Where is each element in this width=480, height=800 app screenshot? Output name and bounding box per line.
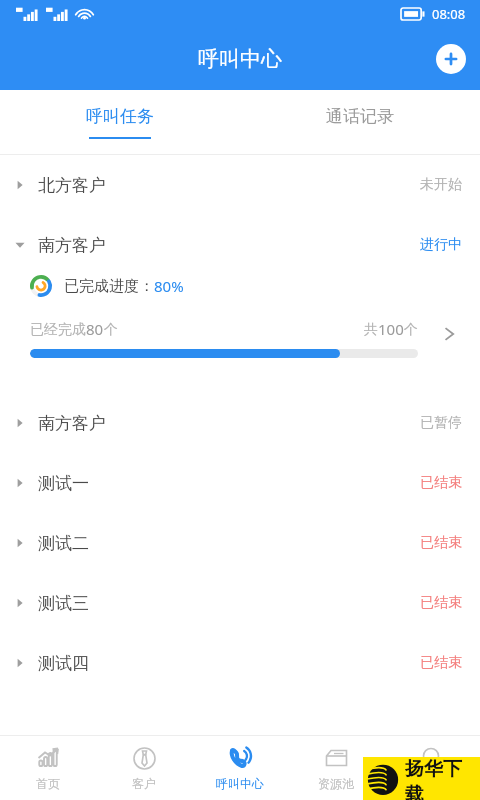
staticText: 呼叫中心 (216, 776, 264, 791)
button[interactable]: 通话记录 (240, 90, 480, 154)
staticText: 已结束 (420, 474, 462, 492)
staticText: 已暂停 (420, 414, 462, 432)
button[interactable]: 呼叫中心 (192, 736, 288, 800)
button[interactable]: 测试三 (0, 573, 480, 633)
button[interactable]: 首页 (0, 736, 96, 800)
staticText: 进行中 (420, 236, 462, 254)
button[interactable]: 测试二 (0, 513, 480, 573)
staticText: 未开始 (420, 176, 462, 194)
staticText: 个 (404, 321, 418, 339)
staticText: 通话记录 (326, 106, 394, 127)
staticText: 北方客户 (38, 175, 106, 196)
staticText: 客户 (132, 776, 156, 791)
staticText: 扬华下载 (405, 757, 480, 800)
staticText: 资源池 (318, 776, 354, 791)
staticText: 已结束 (420, 654, 462, 672)
button[interactable]: 已完成进度： (0, 275, 480, 393)
button[interactable]: 测试四 (0, 633, 480, 693)
button[interactable]: 我的 (384, 736, 480, 800)
staticText: 100 (378, 319, 404, 339)
button[interactable]: 资源池 (288, 736, 384, 800)
staticText: 已结束 (420, 594, 462, 612)
staticText: 南方客户 (38, 413, 106, 434)
staticText: 呼叫中心 (198, 46, 282, 72)
button[interactable]: 客户 (96, 736, 192, 800)
button[interactable]: 呼叫任务 (0, 90, 240, 154)
button[interactable]: Add task (436, 44, 466, 74)
staticText: 测试四 (38, 653, 89, 674)
staticText: 南方客户 (38, 235, 106, 256)
staticText: 我的 (420, 776, 444, 791)
staticText: 08:08 (432, 5, 466, 23)
staticText: 80 (86, 319, 104, 339)
staticText: 80% (154, 276, 184, 296)
staticText: 已经完成 (30, 321, 86, 339)
button[interactable]: 北方客户 (0, 155, 480, 215)
button[interactable]: 测试一 (0, 453, 480, 513)
button[interactable]: 南方客户 (0, 393, 480, 453)
staticText: 测试三 (38, 593, 89, 614)
staticText: 共 (364, 321, 378, 339)
staticText: 已结束 (420, 534, 462, 552)
button[interactable]: 南方客户 (0, 215, 480, 275)
staticText: 测试二 (38, 533, 89, 554)
staticText: 首页 (36, 776, 60, 791)
staticText: 呼叫任务 (86, 106, 154, 127)
staticText: 测试一 (38, 473, 89, 494)
staticText: 个 (104, 321, 118, 339)
staticText: 已完成进度： (64, 277, 154, 296)
